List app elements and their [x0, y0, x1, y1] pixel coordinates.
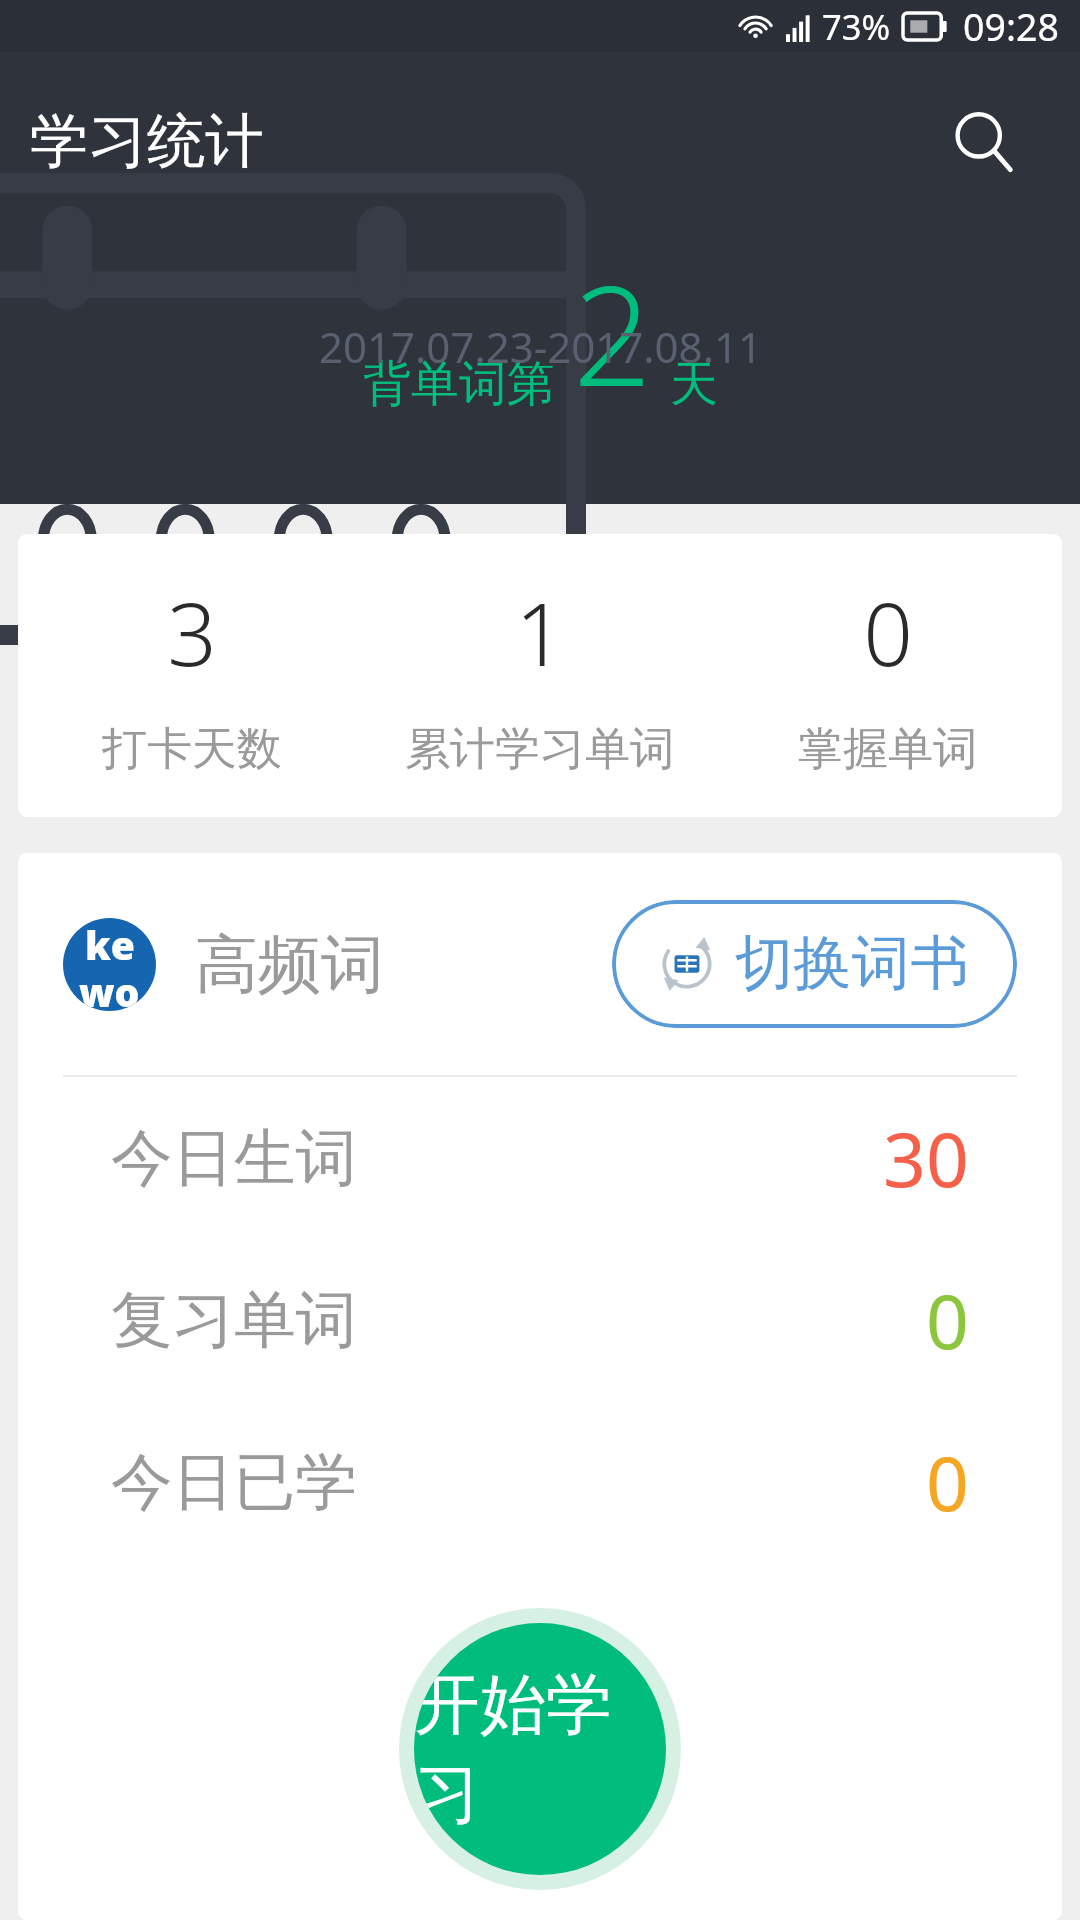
staticText: 切换词书 — [735, 927, 969, 1001]
staticText: 今日生词 — [111, 1120, 357, 1197]
button[interactable]: 今日生词 — [18, 1077, 1062, 1239]
button[interactable]: 复习单词 — [18, 1239, 1062, 1401]
staticText: 2 — [573, 238, 652, 426]
staticText: 学习统计 — [30, 105, 264, 179]
staticText: 今日已学 — [111, 1444, 357, 1521]
staticText: 复习单词 — [111, 1282, 357, 1359]
staticText: 2017.07.23-2017.08.11 — [319, 318, 762, 375]
staticText: 09:28 — [963, 1, 1059, 52]
button[interactable]: Search — [918, 76, 1050, 208]
button[interactable]: 今日已学 — [18, 1401, 1062, 1563]
staticText: 开始学习 — [414, 1663, 666, 1835]
staticText: 30 — [883, 1107, 969, 1209]
button[interactable]: 0 — [714, 573, 1062, 778]
staticText: 73% — [822, 3, 891, 50]
staticText: 天 — [670, 354, 718, 414]
button[interactable]: 开始学习 — [414, 1623, 666, 1875]
staticText: 背单词第 — [363, 354, 555, 414]
button[interactable]: 切换词书 — [612, 900, 1017, 1028]
staticText: 0 — [926, 1431, 969, 1533]
staticText: 高频词 — [195, 925, 384, 1004]
staticText: 掌握单词 — [798, 721, 978, 778]
staticText: wo — [79, 965, 140, 1011]
staticText: 累计学习单词 — [405, 721, 675, 778]
staticText: 0 — [926, 1269, 969, 1371]
staticText: 0 — [863, 573, 913, 691]
staticText: 打卡天数 — [102, 721, 282, 778]
staticText: 1 — [515, 573, 565, 691]
button[interactable]: 1 — [366, 573, 714, 778]
button[interactable]: 3 — [18, 573, 366, 778]
staticText: 3 — [167, 573, 217, 691]
staticText: ke — [85, 918, 135, 971]
